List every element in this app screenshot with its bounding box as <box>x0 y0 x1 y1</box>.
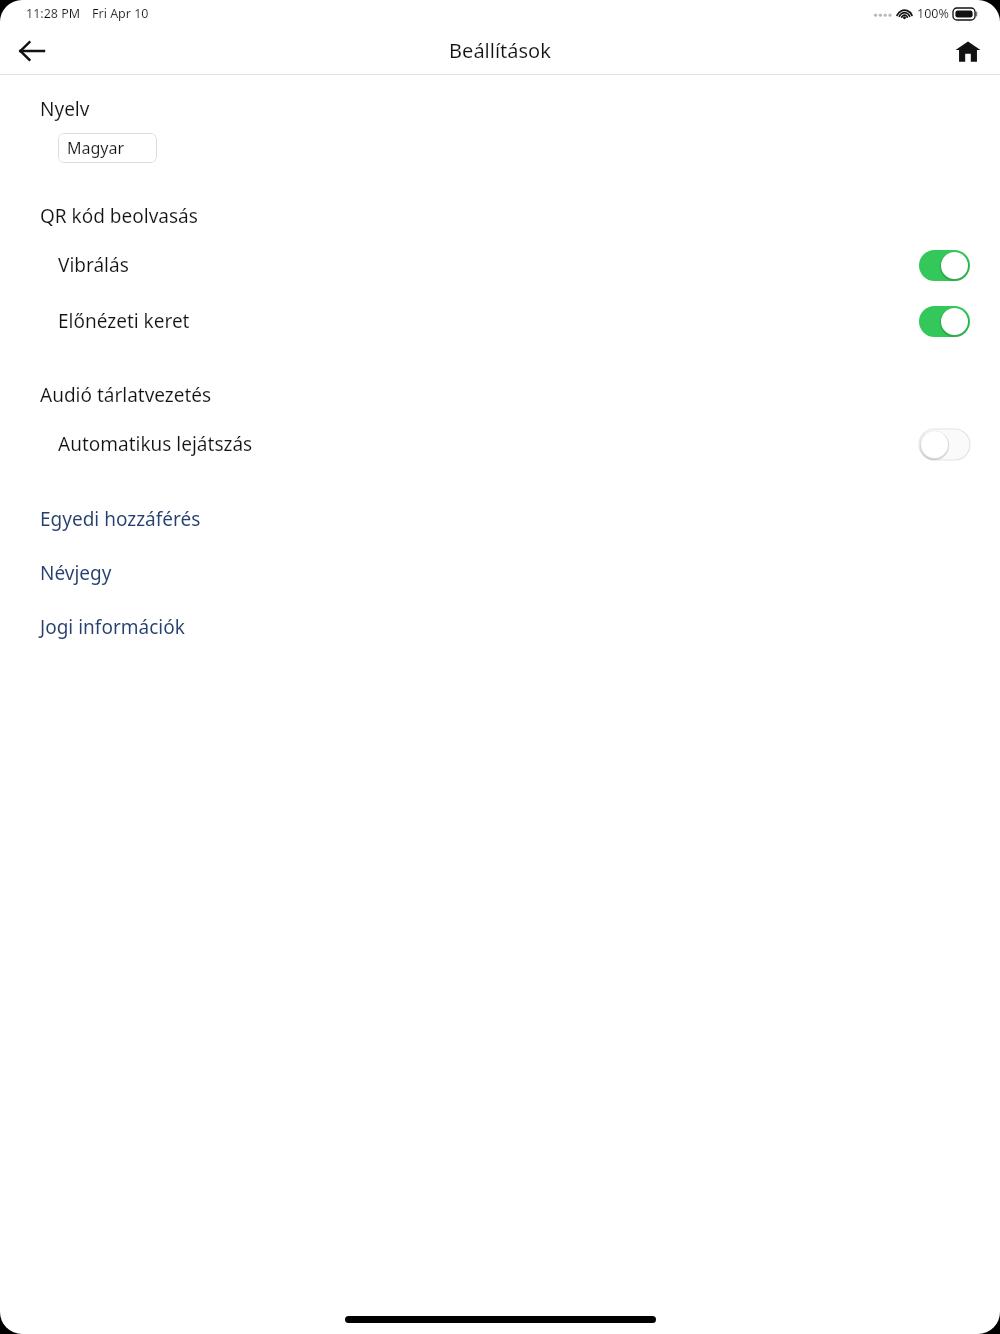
button[interactable]: Jogi információk <box>0 600 1000 654</box>
staticText: Egyedi hozzáférés <box>40 506 201 532</box>
button[interactable]: Off <box>919 429 970 460</box>
button[interactable]: On <box>919 306 970 337</box>
button[interactable]: On <box>919 250 970 281</box>
button[interactable]: Back <box>8 27 56 74</box>
staticText: Előnézeti keret <box>58 308 190 334</box>
staticText: 100% <box>917 5 949 22</box>
staticText: Nyelv <box>40 96 90 122</box>
staticText: Automatikus lejátszás <box>58 431 253 457</box>
button[interactable]: Automatikus lejátszás <box>0 418 1000 470</box>
staticText: QR kód beolvasás <box>40 203 198 229</box>
button[interactable]: Névjegy <box>0 546 1000 600</box>
staticText: Audió tárlatvezetés <box>40 382 212 408</box>
staticText: Fri Apr 10 <box>92 5 149 22</box>
button[interactable]: Előnézeti keret <box>0 295 1000 347</box>
button[interactable]: Home <box>944 27 992 74</box>
staticText: Vibrálás <box>58 252 129 278</box>
button[interactable]: Egyedi hozzáférés <box>0 492 1000 546</box>
button[interactable]: Magyar <box>58 133 157 163</box>
staticText: Magyar <box>67 137 125 159</box>
staticText: Beállítások <box>449 37 551 64</box>
staticText: 11:28 PM <box>26 5 81 22</box>
staticText: Névjegy <box>40 560 112 586</box>
button[interactable]: Vibrálás <box>0 239 1000 291</box>
staticText: Jogi információk <box>40 614 185 640</box>
